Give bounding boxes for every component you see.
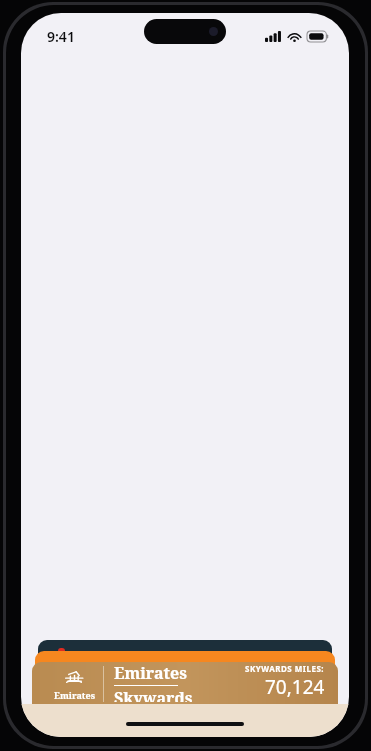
staticText: 70,124	[265, 674, 325, 700]
staticText: SKYWARDS MILES:	[245, 663, 325, 674]
button[interactable]	[35, 651, 335, 674]
button[interactable]	[38, 640, 332, 674]
staticText: Emirates	[54, 689, 95, 701]
staticText: 9:41	[47, 27, 75, 46]
button[interactable]: Emirates	[32, 662, 338, 704]
staticText: Emirates	[114, 662, 187, 684]
staticText: Skywards	[114, 687, 193, 702]
